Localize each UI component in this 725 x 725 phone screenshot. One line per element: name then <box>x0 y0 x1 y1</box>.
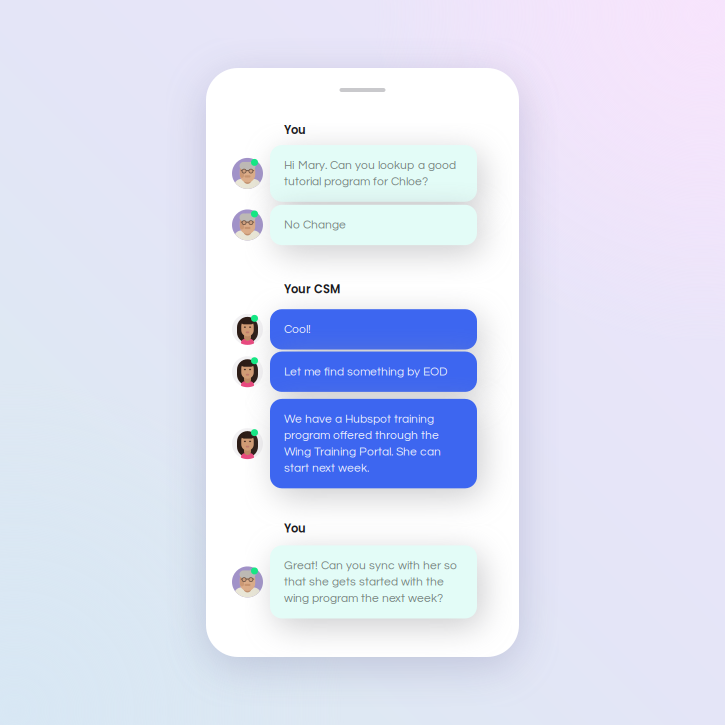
staticText: We have a Hubspot training program offer… <box>284 413 441 474</box>
staticText: Your CSM <box>284 281 340 297</box>
button[interactable]: Cool! <box>232 309 477 350</box>
staticText: You <box>284 520 306 536</box>
button[interactable]: No Change <box>232 205 477 245</box>
button[interactable]: Great! Can you sync with her so that she… <box>232 545 477 618</box>
staticText: Let me find something by EOD <box>284 365 447 378</box>
button[interactable]: Let me find something by EOD <box>232 351 477 392</box>
button[interactable]: Hi Mary. Can you lookup a good tutorial … <box>232 145 477 202</box>
staticText: Great! Can you sync with her so that she… <box>284 559 457 604</box>
staticText: Cool! <box>284 323 311 336</box>
button[interactable]: We have a Hubspot training program offer… <box>232 399 477 488</box>
staticText: No Change <box>284 219 346 231</box>
staticText: You <box>284 122 306 138</box>
staticText: Hi Mary. Can you lookup a good tutorial … <box>284 159 456 188</box>
